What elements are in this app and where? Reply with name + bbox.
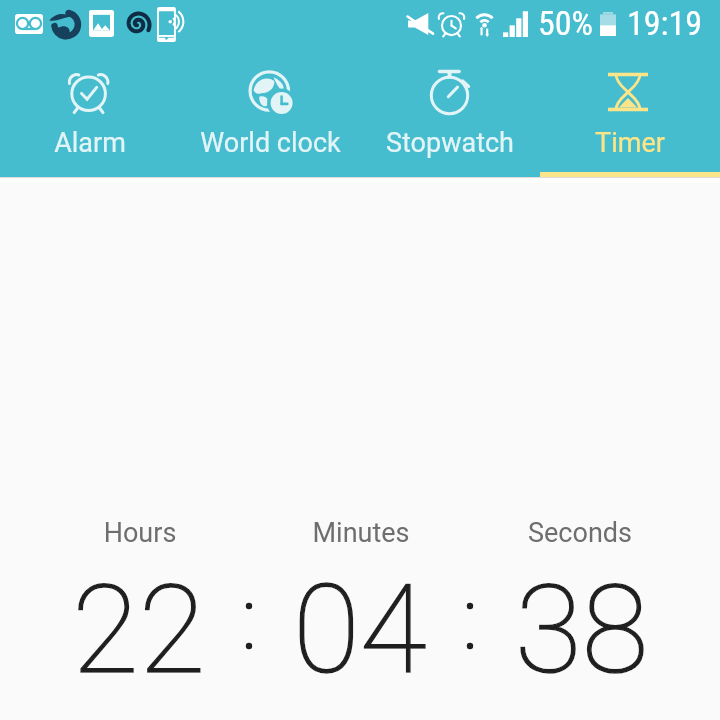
button[interactable]: World clock — [180, 50, 360, 177]
staticText: 04 — [293, 559, 427, 699]
staticText: 22 — [72, 559, 206, 699]
other: Battery 50 percent — [600, 12, 616, 36]
other: Vibrate — [157, 7, 187, 42]
other: Wi-Fi — [473, 11, 496, 38]
other: Notification — [50, 9, 81, 40]
other: Voicemail — [15, 14, 43, 34]
other: Signal — [503, 11, 528, 37]
staticText: World clock — [200, 127, 341, 159]
other: Screenshot — [89, 10, 114, 37]
staticText: Timer — [595, 127, 665, 159]
staticText: 50% — [538, 3, 594, 43]
button[interactable]: Stopwatch — [360, 50, 540, 177]
staticText: Hours — [70, 517, 210, 549]
button[interactable]: Seconds — [492, 505, 672, 700]
button[interactable]: Minutes — [270, 505, 450, 700]
button[interactable]: Timer — [540, 50, 720, 177]
staticText: 38 — [515, 559, 649, 699]
staticText: Alarm — [54, 127, 126, 159]
staticText: 22 — [72, 559, 206, 699]
other: Alarm set — [439, 11, 464, 39]
button[interactable]: Alarm — [0, 50, 180, 177]
button[interactable]: Hours — [49, 505, 229, 700]
other: Sound off — [407, 13, 433, 35]
staticText: Stopwatch — [386, 127, 514, 159]
other: App update — [125, 11, 150, 37]
staticText: 04 — [293, 559, 427, 699]
staticText: 19:19 — [627, 3, 703, 43]
staticText: 38 — [515, 559, 649, 699]
staticText: Seconds — [510, 517, 650, 549]
staticText: Minutes — [291, 517, 431, 549]
